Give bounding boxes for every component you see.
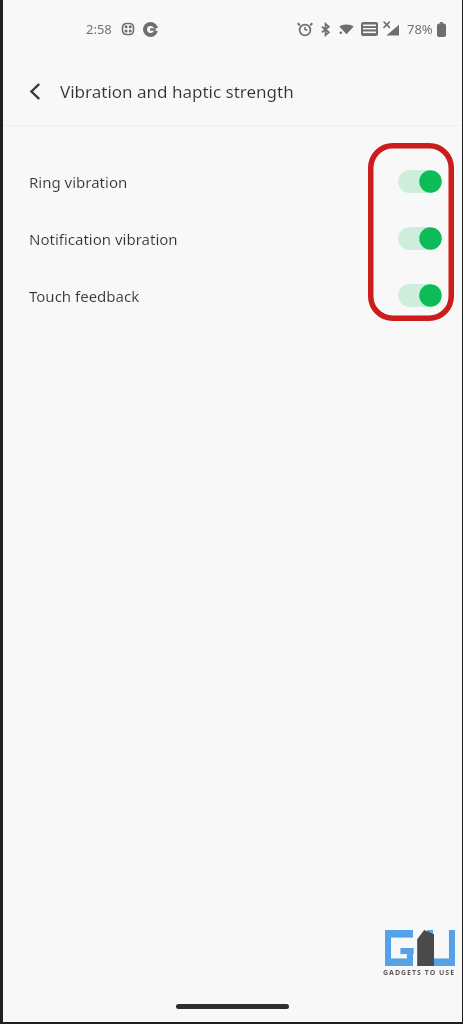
button[interactable]: Notification vibration [3, 210, 462, 267]
button[interactable]: Back [17, 73, 53, 109]
staticText: GADGETS TO USE [383, 968, 456, 978]
button[interactable]: Touch feedback [398, 284, 442, 307]
button[interactable]: Ring vibration [398, 170, 442, 193]
staticText: Notification vibration [29, 229, 398, 249]
staticText: 78% [407, 20, 433, 38]
staticText: Touch feedback [29, 286, 398, 306]
button[interactable]: Notification vibration [398, 227, 442, 250]
staticText: 2:58 [86, 20, 112, 38]
staticText: Ring vibration [29, 172, 398, 192]
staticText: Vibration and haptic strength [60, 80, 294, 103]
button[interactable]: Ring vibration [3, 153, 462, 210]
button[interactable]: Touch feedback [3, 267, 462, 324]
